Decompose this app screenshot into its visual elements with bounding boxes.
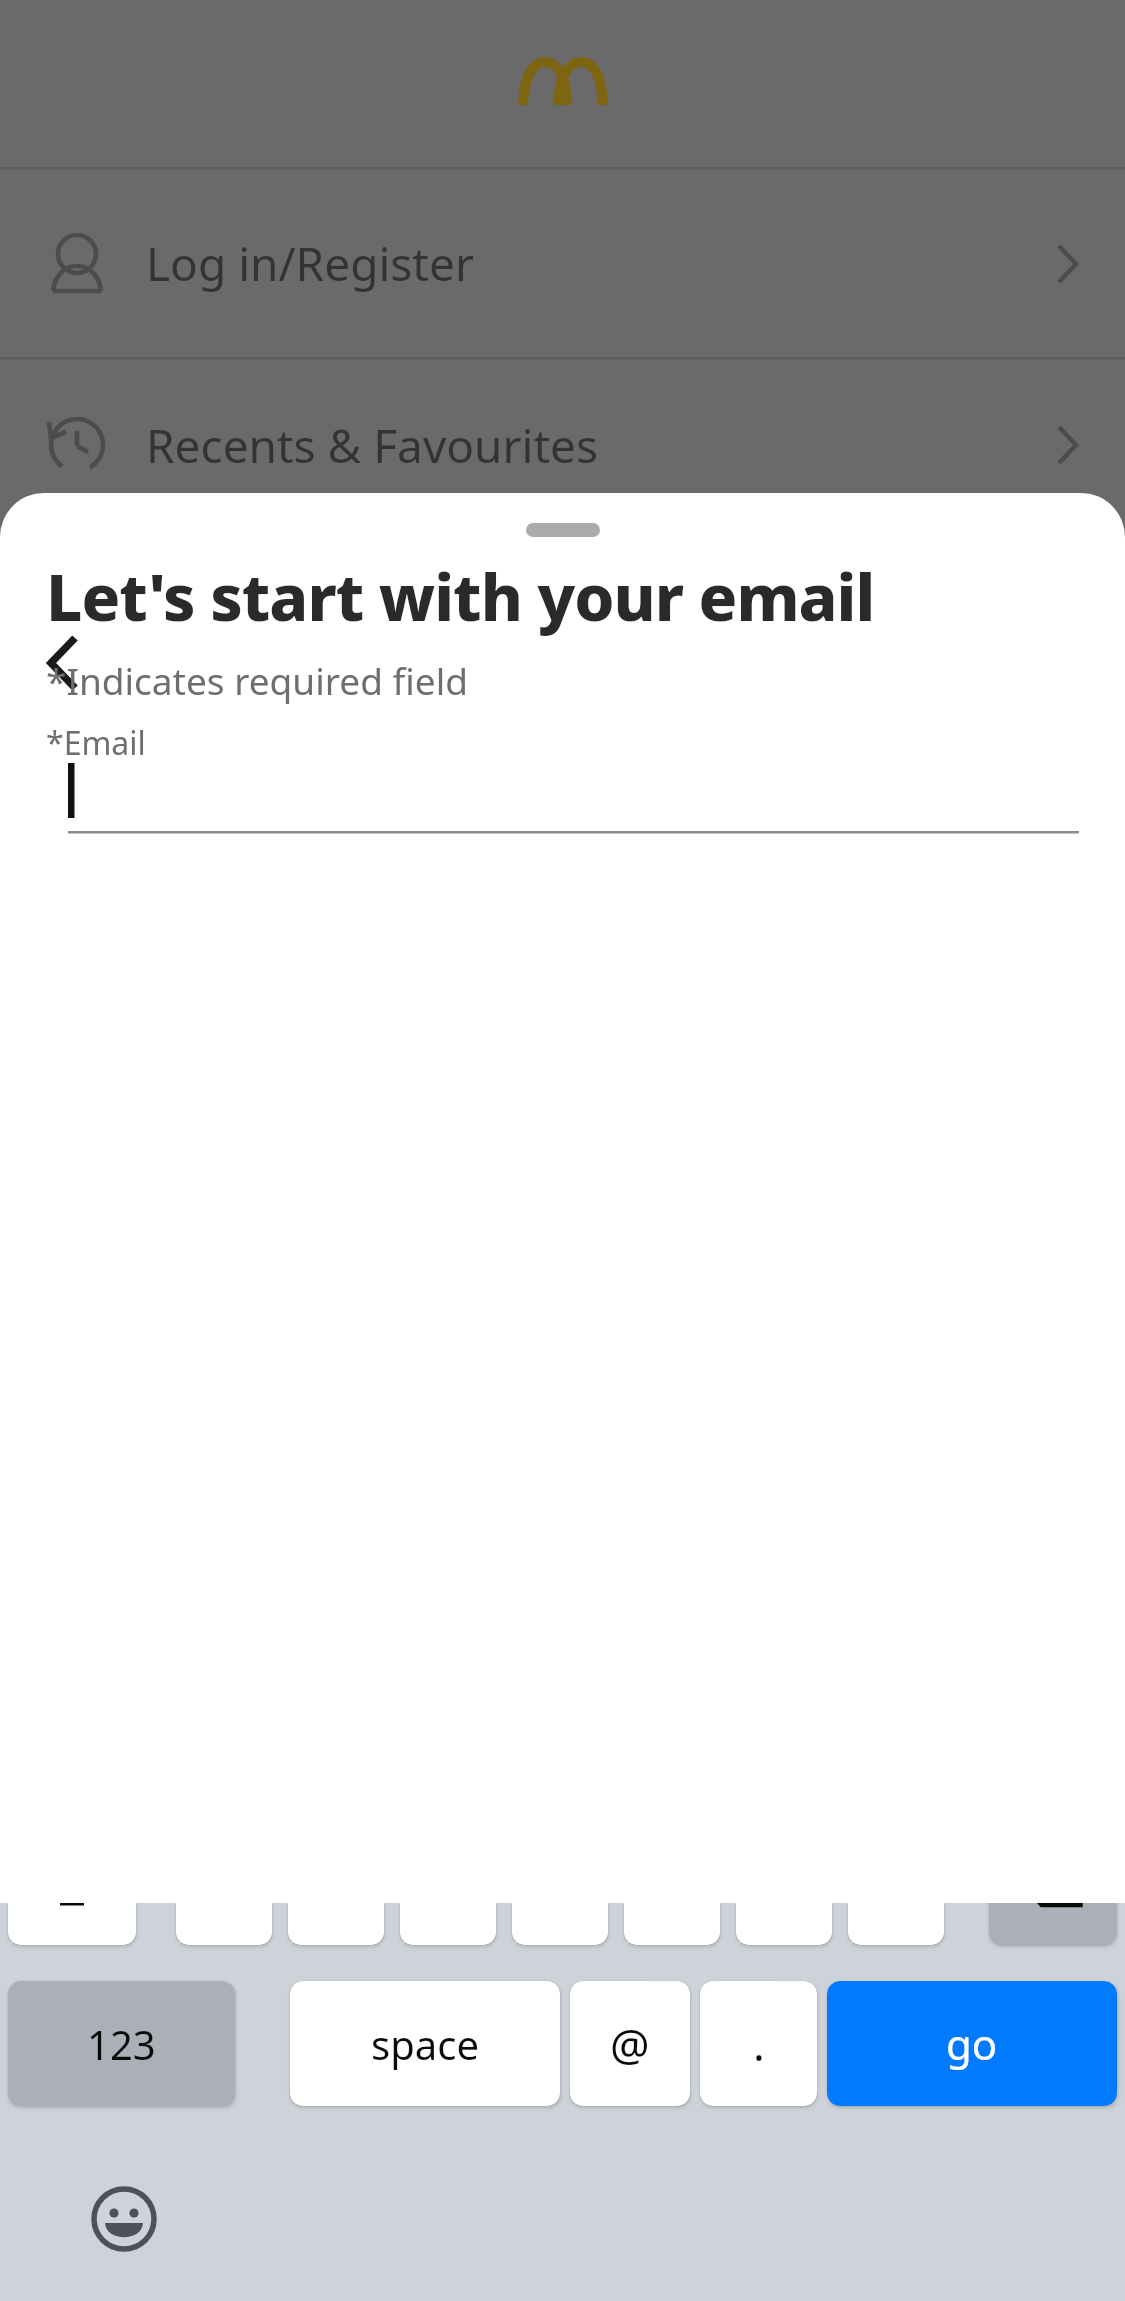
staticText: space — [371, 2017, 479, 2071]
button[interactable]: Z — [176, 1820, 272, 1945]
staticText: *Email — [46, 721, 146, 765]
button[interactable]: Recents & Favourites — [0, 360, 1125, 530]
staticText: 123 — [87, 2017, 156, 2071]
button[interactable]: M — [848, 1820, 944, 1945]
button[interactable]: B — [624, 1820, 720, 1945]
button[interactable]: space — [290, 1981, 560, 2106]
button[interactable]: Log in/Register — [0, 170, 1125, 357]
button[interactable]: 123 — [8, 1981, 235, 2106]
button[interactable]: V — [512, 1820, 608, 1945]
button[interactable]: Shift — [8, 1820, 136, 1945]
staticText: *Indicates required field — [46, 655, 468, 705]
button[interactable] — [46, 753, 1079, 903]
staticText: Let's start with your email — [46, 553, 875, 640]
button[interactable]: Backspace — [989, 1820, 1117, 1945]
button[interactable]: Emoji — [62, 2157, 186, 2281]
staticText: Recents & Favourites — [146, 414, 598, 477]
button[interactable]: C — [400, 1820, 496, 1945]
button[interactable]: N — [736, 1820, 832, 1945]
staticText: Log in/Register — [146, 232, 474, 295]
button[interactable]: X — [288, 1820, 384, 1945]
staticText: . — [753, 2014, 765, 2074]
staticText: @ — [610, 2014, 650, 2074]
staticText: go — [946, 2015, 998, 2072]
button[interactable]: go — [827, 1981, 1117, 2106]
button[interactable]: @ — [570, 1981, 690, 2106]
button[interactable]: . — [700, 1981, 817, 2106]
button[interactable]: Back — [24, 625, 100, 701]
